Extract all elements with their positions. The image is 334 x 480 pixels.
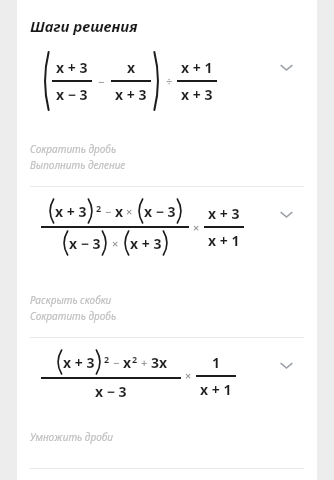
button[interactable]: Развернуть шаг: [273, 201, 299, 227]
button[interactable]: x + 3: [17, 36, 317, 186]
staticText: Раскрыть скобки: [30, 293, 112, 307]
staticText: x + 1: [200, 380, 232, 399]
staticText: x: [127, 58, 136, 77]
staticText: x − 3: [144, 202, 176, 221]
staticText: Умножить дроби: [30, 430, 113, 444]
staticText: x + 3: [63, 353, 95, 372]
staticText: ×: [126, 204, 133, 219]
staticText: x + 1: [181, 58, 213, 77]
staticText: ×: [185, 368, 192, 383]
button[interactable]: x + 3: [17, 187, 317, 337]
staticText: x: [115, 202, 124, 221]
staticText: x + 3: [181, 85, 213, 104]
staticText: −: [105, 204, 112, 219]
staticText: +: [141, 355, 148, 370]
staticText: x + 3: [115, 85, 147, 104]
staticText: 2: [132, 353, 138, 365]
staticText: 2: [104, 353, 110, 365]
staticText: 1: [212, 353, 221, 372]
staticText: Выполнить деление: [30, 158, 126, 172]
staticText: ×: [112, 236, 119, 251]
button[interactable]: Развернуть шаг: [273, 54, 299, 80]
staticText: −: [98, 74, 105, 89]
staticText: x + 3: [208, 204, 240, 223]
staticText: ÷: [166, 74, 173, 89]
staticText: x + 3: [55, 202, 87, 221]
staticText: Сократить дробь: [30, 309, 117, 323]
button[interactable]: x + 3: [17, 338, 317, 468]
staticText: ×: [193, 220, 200, 235]
staticText: 2: [96, 202, 102, 214]
staticText: x + 1: [208, 231, 240, 250]
staticText: x − 3: [69, 234, 101, 253]
staticText: x + 3: [56, 58, 88, 77]
staticText: x − 3: [56, 85, 88, 104]
staticText: −: [113, 355, 120, 370]
staticText: x: [123, 353, 132, 372]
staticText: Шаги решения: [30, 16, 138, 36]
staticText: x + 3: [130, 234, 162, 253]
staticText: Сократить дробь: [30, 142, 117, 156]
button[interactable]: Развернуть шаг: [273, 352, 299, 378]
staticText: x − 3: [95, 382, 127, 401]
staticText: 3x: [151, 353, 168, 372]
